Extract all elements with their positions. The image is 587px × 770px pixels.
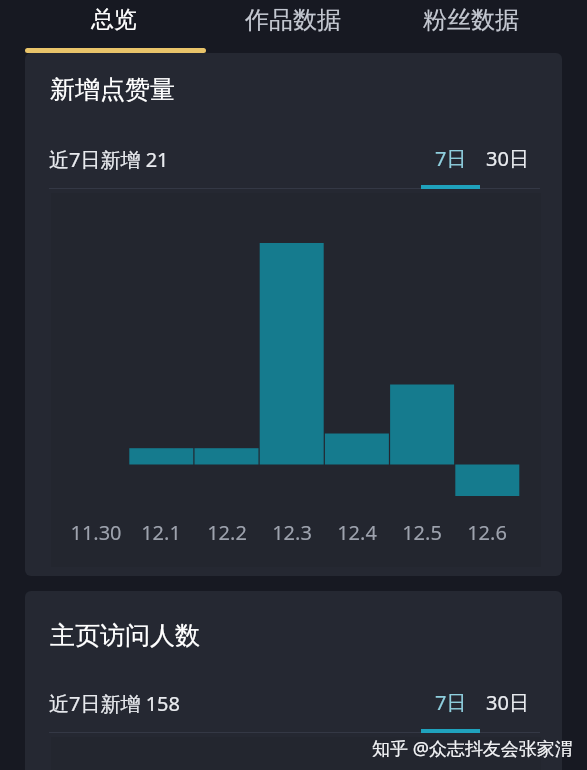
staticText: 11.30 xyxy=(70,519,122,546)
staticText: 7日 xyxy=(435,689,467,716)
staticText: 近7日新增 21 xyxy=(49,146,169,173)
staticText: 新增点赞量 xyxy=(50,74,175,105)
staticText: 知乎 @众志抖友会张家渭 xyxy=(372,736,573,761)
staticText: 12.6 xyxy=(467,519,507,546)
button[interactable]: 粉丝数据 xyxy=(382,0,560,48)
button[interactable]: 7日 xyxy=(421,141,480,191)
staticText: 30日 xyxy=(486,689,529,716)
button[interactable]: 作品数据 xyxy=(204,0,382,48)
staticText: 12.3 xyxy=(272,519,312,546)
staticText: 近7日新增 158 xyxy=(49,690,180,717)
staticText: 12.4 xyxy=(337,519,377,546)
staticText: 作品数据 xyxy=(245,5,341,35)
staticText: 12.5 xyxy=(402,519,442,546)
button[interactable]: 30日 xyxy=(481,141,533,191)
staticText: 粉丝数据 xyxy=(423,5,519,35)
other: 近7日新增点赞量柱状图 xyxy=(51,193,541,567)
staticText: 主页访问人数 xyxy=(50,620,200,651)
button[interactable]: 新增点赞量 xyxy=(25,53,562,576)
button[interactable]: 总览 xyxy=(25,0,203,48)
staticText: 7日 xyxy=(435,145,467,172)
button[interactable]: 30日 xyxy=(481,685,533,735)
staticText: 12.2 xyxy=(207,519,247,546)
staticText: 30日 xyxy=(486,145,529,172)
button[interactable]: 7日 xyxy=(421,685,480,735)
staticText: 12.1 xyxy=(141,519,181,546)
staticText: 总览 xyxy=(91,5,137,34)
button[interactable]: 主页访问人数 xyxy=(25,591,562,770)
